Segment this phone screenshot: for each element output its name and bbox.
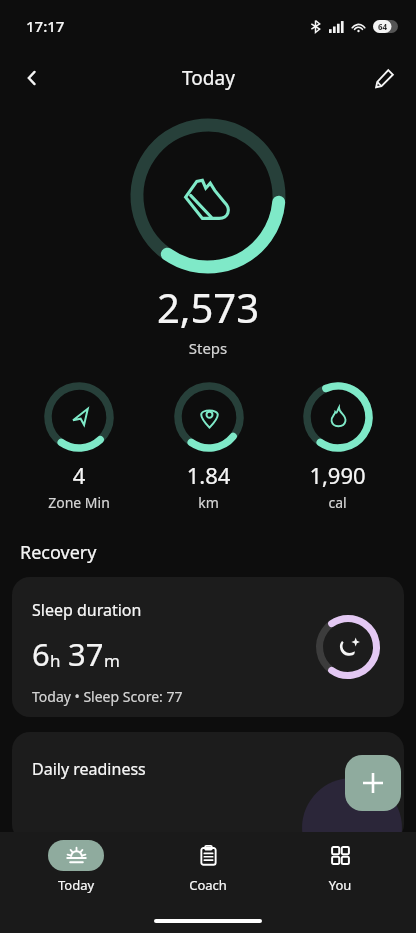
staticText: cal: [273, 493, 402, 512]
staticText: Today • Sleep Score: 77: [32, 687, 183, 706]
staticText: 37: [68, 633, 104, 675]
staticText: Daily readiness: [32, 758, 146, 780]
button[interactable]: 4: [14, 380, 144, 512]
staticText: m: [104, 649, 120, 672]
button[interactable]: Sleep duration: [12, 577, 404, 717]
button[interactable]: 1.84: [144, 380, 273, 512]
staticText: km: [144, 493, 273, 512]
button[interactable]: Back: [10, 56, 54, 100]
staticText: Sleep duration: [32, 599, 142, 621]
staticText: 2,573: [0, 280, 416, 334]
button[interactable]: 1,990: [273, 380, 402, 512]
staticText: h: [50, 649, 61, 672]
staticText: 17:17: [26, 16, 65, 36]
button[interactable]: You: [284, 832, 396, 894]
staticText: 1.84: [144, 460, 273, 490]
button[interactable]: Add: [345, 755, 401, 811]
button[interactable]: Edit: [362, 56, 406, 100]
staticText: Today: [20, 876, 132, 894]
staticText: 4: [14, 460, 144, 490]
staticText: Recovery: [20, 540, 97, 565]
staticText: Coach: [152, 876, 264, 894]
staticText: Steps: [0, 338, 416, 358]
staticText: Zone Min: [14, 493, 144, 512]
staticText: Today: [182, 65, 235, 91]
button[interactable]: Coach: [152, 832, 264, 894]
staticText: 6: [32, 633, 50, 675]
staticText: 1,990: [273, 460, 402, 490]
button[interactable]: Today: [20, 832, 132, 894]
staticText: You: [284, 876, 396, 894]
staticText: 64: [373, 21, 392, 32]
button[interactable]: Daily readiness: [12, 732, 404, 842]
